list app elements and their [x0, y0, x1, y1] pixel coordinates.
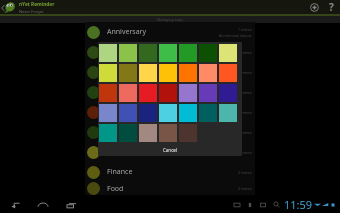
- staticText: Never Forget: [19, 9, 44, 14]
- staticText: nYet Reminder: [19, 1, 55, 8]
- staticText: 0 entries: [238, 170, 252, 175]
- button[interactable]: Anniversary: [85, 22, 255, 42]
- staticText: Fashion: [107, 147, 133, 157]
- staticText: Custom: [107, 87, 133, 97]
- button[interactable]: Fashion: [85, 142, 255, 162]
- button[interactable]: Custom: [85, 82, 255, 102]
- staticText: Finance: [107, 167, 133, 177]
- button[interactable]: Home: [36, 198, 50, 212]
- staticText: 1 entries: [238, 27, 252, 32]
- button[interactable]: Education: [85, 102, 255, 122]
- staticText: Anniversary import: [219, 33, 252, 38]
- button[interactable]: Add: [306, 0, 322, 14]
- button[interactable]: Back: [8, 198, 22, 212]
- staticText: 0 entries: [238, 186, 252, 191]
- button[interactable]: Recent apps: [64, 198, 78, 212]
- button[interactable]: Navigate up: [0, 2, 6, 13]
- staticText: ?: [329, 0, 334, 14]
- button[interactable]: Cancel: [98, 144, 242, 156]
- staticText: Business: [107, 67, 137, 77]
- staticText: Cancel: [163, 147, 178, 153]
- staticText: 11:59: [284, 197, 313, 212]
- staticText: Food: [107, 184, 124, 194]
- button[interactable]: Business: [85, 62, 255, 82]
- staticText: Education: [107, 107, 140, 117]
- staticText: Birthday: [107, 47, 135, 57]
- button[interactable]: Birthday: [85, 42, 255, 62]
- button[interactable]: Family: [85, 122, 255, 142]
- staticText: 0 entries: [238, 90, 252, 95]
- button[interactable]: Help: [324, 0, 338, 14]
- button[interactable]: Finance: [85, 162, 255, 182]
- staticText: 0 entries: [238, 130, 252, 135]
- button[interactable]: Food: [85, 182, 255, 195]
- staticText: Anniversary: [107, 27, 147, 37]
- staticText: Family: [107, 127, 129, 137]
- staticText: 0 entries: [238, 50, 252, 55]
- staticText: Manage groups: [157, 17, 183, 22]
- staticText: 0 entries: [238, 150, 252, 155]
- staticText: 0 entries: [238, 70, 252, 75]
- staticText: 0 entries: [238, 110, 252, 115]
